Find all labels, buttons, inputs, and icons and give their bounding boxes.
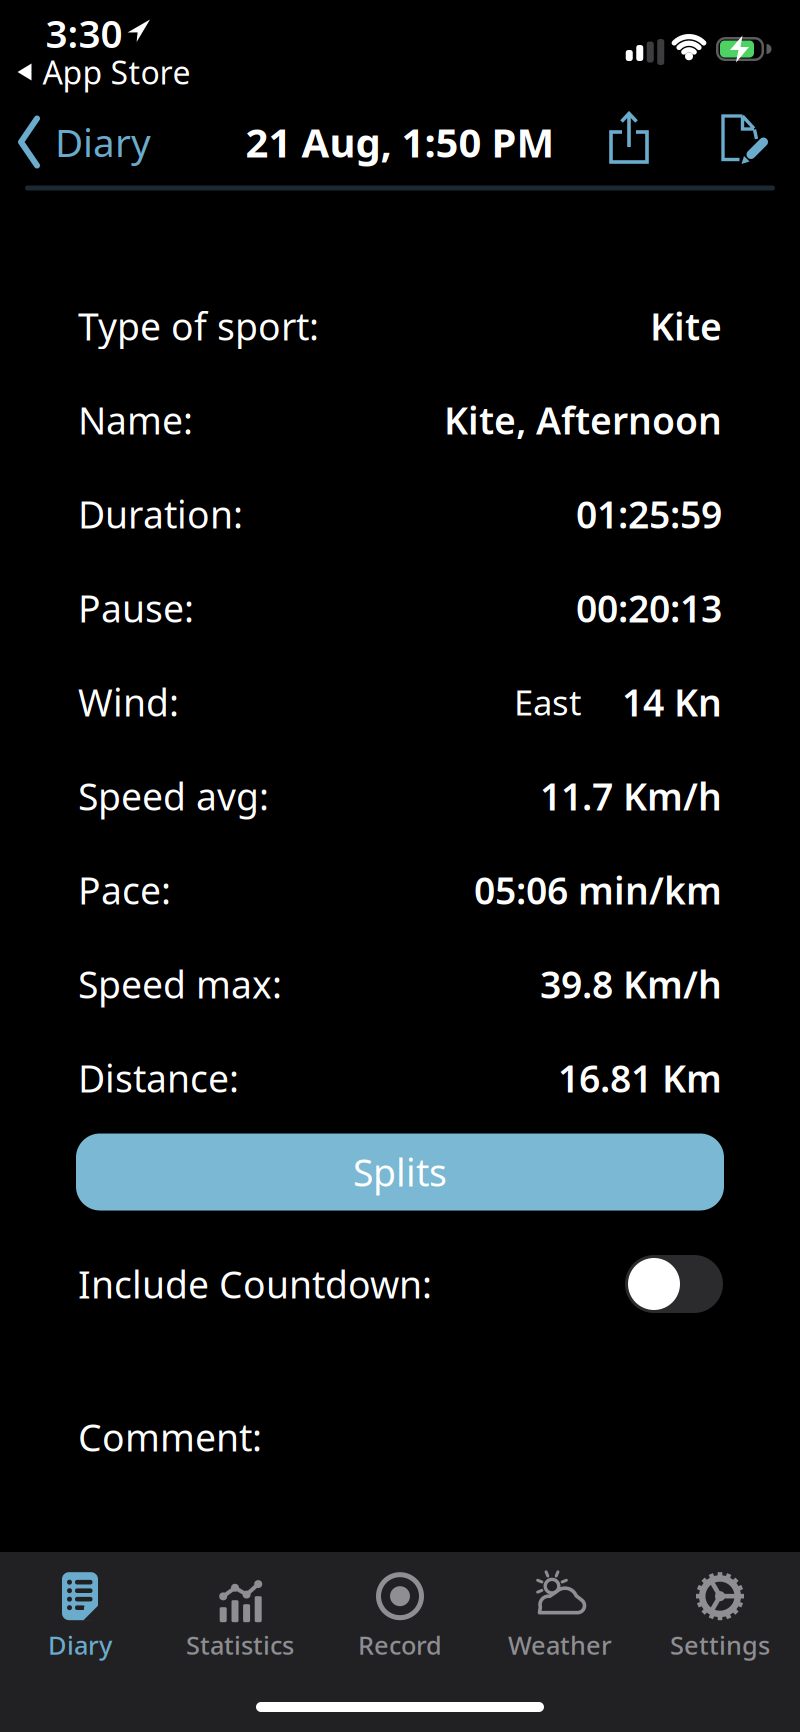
staticText: 16.81 Km (558, 1053, 722, 1103)
button[interactable]: Record (320, 1564, 480, 1668)
button[interactable]: Include Countdown (625, 1255, 723, 1313)
staticText: Statistics (186, 1628, 294, 1662)
staticText: Settings (670, 1628, 770, 1662)
staticText: 39.8 Km/h (540, 959, 722, 1009)
staticText: Name: (78, 395, 193, 445)
button[interactable]: Diary (0, 1564, 160, 1668)
staticText: Type of sport: (78, 301, 319, 351)
staticText: 21 Aug, 1:50 PM (245, 115, 554, 168)
staticText: Include Countdown: (78, 1259, 432, 1309)
button[interactable]: Weather (480, 1564, 640, 1668)
staticText: Speed avg: (78, 771, 269, 821)
staticText: Pause: (78, 583, 194, 633)
button[interactable]: Back to Diary (17, 115, 151, 168)
button[interactable]: Back to App Store (17, 51, 190, 93)
staticText: Kite, Afternoon (444, 395, 722, 445)
staticText: Wind: (78, 677, 179, 727)
button[interactable]: Share (607, 111, 651, 165)
staticText: 14 Kn (622, 677, 722, 727)
button[interactable]: Splits (76, 1133, 724, 1210)
staticText: Pace: (78, 865, 171, 915)
staticText: Record (358, 1628, 442, 1662)
button[interactable]: Settings (640, 1564, 800, 1668)
staticText: 01:25:59 (576, 489, 722, 539)
button[interactable]: Edit entry (718, 110, 770, 168)
staticText: Diary (48, 1628, 112, 1662)
staticText: Kite (650, 301, 722, 351)
staticText: App Store (42, 51, 190, 93)
staticText: Distance: (78, 1053, 239, 1103)
staticText: East (514, 679, 582, 725)
button[interactable]: Statistics (160, 1564, 320, 1668)
staticText: Weather (508, 1628, 612, 1662)
staticText: 00:20:13 (576, 583, 722, 633)
staticText: 3:30 (45, 7, 122, 59)
staticText: Diary (55, 116, 151, 168)
staticText: Speed max: (78, 959, 282, 1009)
staticText: Splits (353, 1147, 447, 1197)
staticText: Duration: (78, 489, 243, 539)
staticText: 11.7 Km/h (540, 771, 722, 821)
staticText: 05:06 min/km (474, 865, 722, 915)
staticText: Comment: (78, 1412, 262, 1462)
